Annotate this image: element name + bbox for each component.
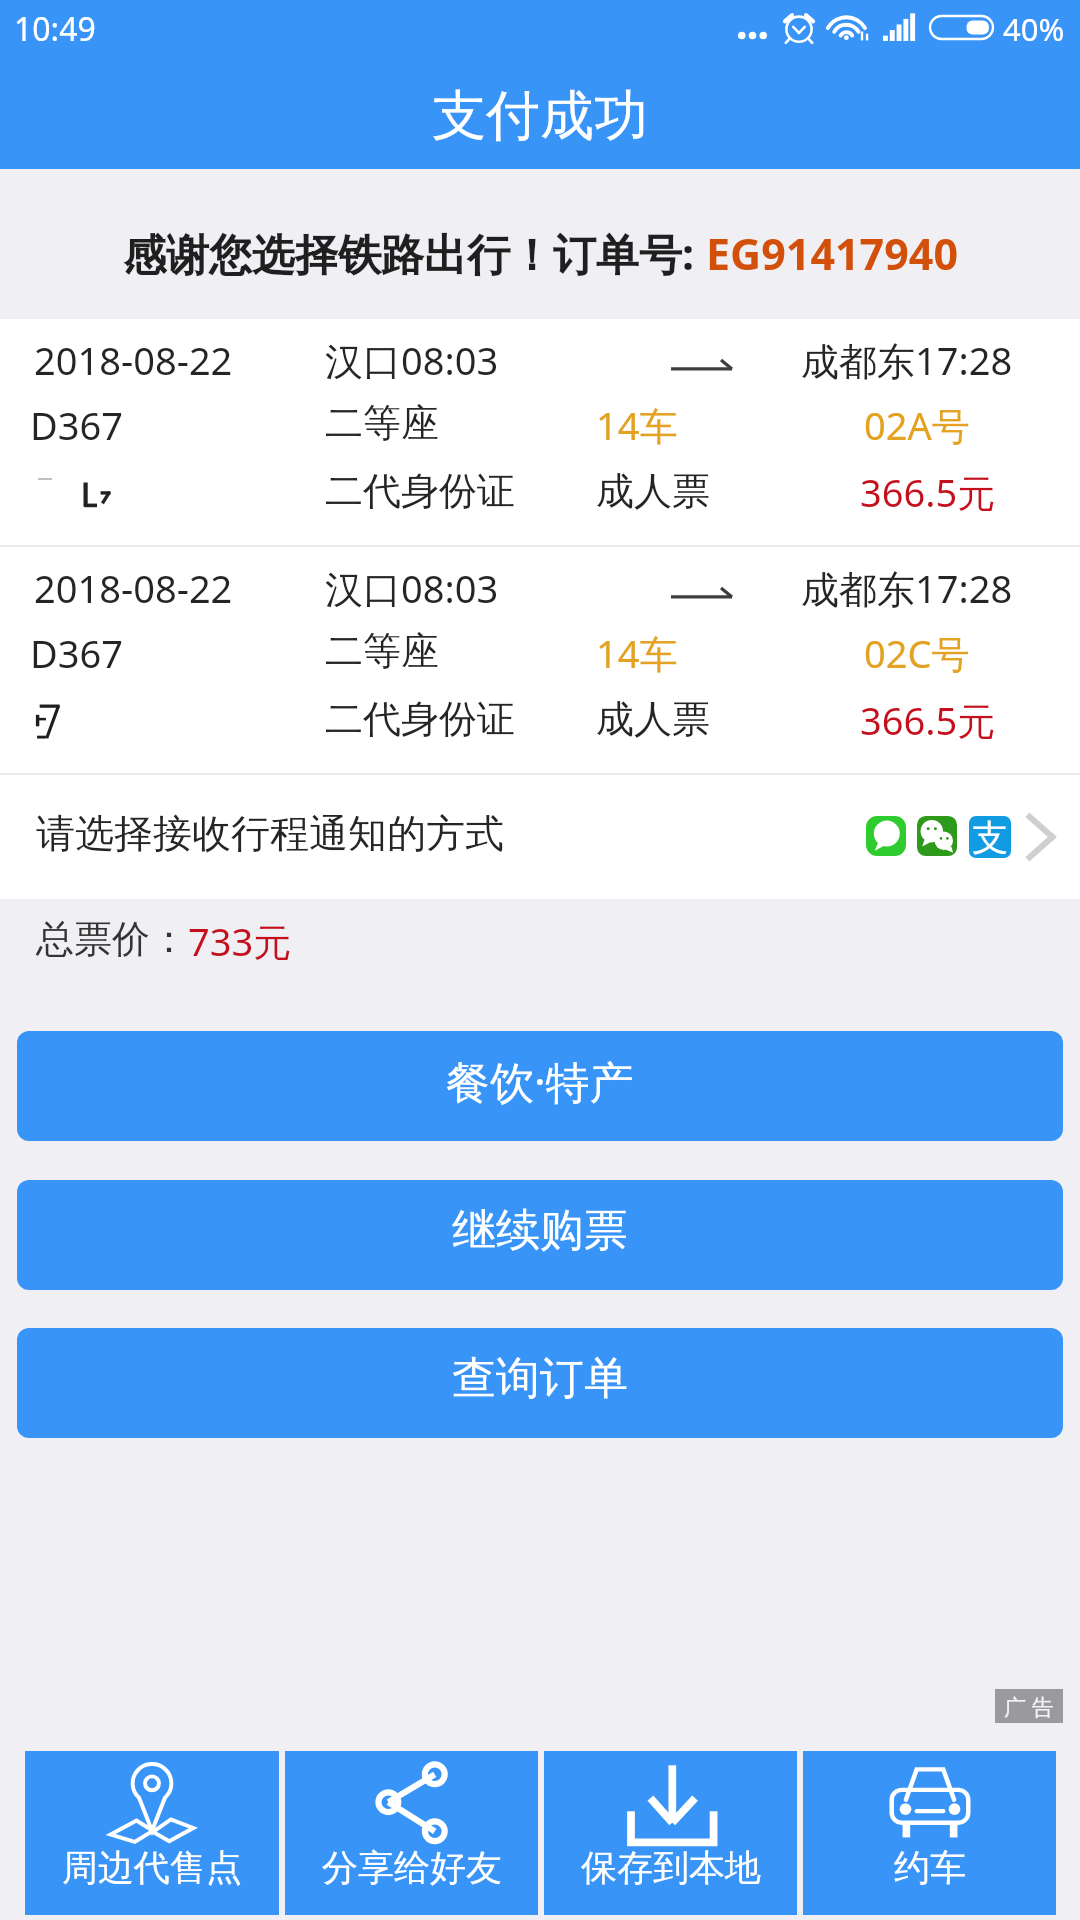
staticText: 2018-08-22 (34, 334, 233, 386)
staticText: 分享给好友 (322, 1845, 502, 1890)
staticText: 02A号 (864, 399, 970, 451)
staticText: D367 (30, 627, 123, 679)
staticText: 请选择接收行程通知的方式 (36, 809, 504, 858)
staticText: 366.5元 (860, 466, 996, 518)
staticText: 二代身份证 (325, 467, 515, 515)
staticText: 366.5元 (860, 694, 996, 746)
staticText: 10:49 (14, 7, 96, 51)
staticText: 733元 (188, 915, 292, 967)
button[interactable]: 请选择接收行程通知的方式 (0, 775, 1080, 899)
staticText: 成都东17:28 (801, 334, 1013, 386)
staticText: 感谢您选择铁路出行！订单号: (123, 224, 706, 283)
staticText: 成都东17:28 (801, 562, 1013, 614)
staticText: 继续购票 (452, 1203, 628, 1258)
staticText: 二等座 (325, 627, 439, 675)
staticText: 成人票 (596, 695, 710, 743)
staticText: 查询订单 (452, 1351, 628, 1406)
staticText: 支付成功 (432, 82, 648, 150)
button[interactable]: 继续购票 (17, 1180, 1063, 1290)
staticText: 周边代售点 (62, 1845, 242, 1890)
button[interactable]: 周边代售点 (25, 1751, 279, 1915)
staticText: D367 (30, 399, 123, 451)
staticText: 总票价： (36, 915, 188, 963)
staticText: 14车 (596, 627, 678, 679)
staticText: 二等座 (325, 399, 439, 447)
button[interactable]: 约车 (803, 1751, 1056, 1915)
staticText: 支 (972, 816, 1008, 857)
staticText: 约车 (894, 1845, 966, 1890)
staticText: 成人票 (596, 467, 710, 515)
button[interactable]: 保存到本地 (544, 1751, 797, 1915)
staticText: 2018-08-22 (34, 562, 233, 614)
staticText: 14车 (596, 399, 678, 451)
staticText: 40% (1003, 8, 1065, 50)
staticText: 汉口08:03 (325, 334, 499, 386)
staticText: 保存到本地 (581, 1845, 761, 1890)
button[interactable]: 分享给好友 (285, 1751, 538, 1915)
staticText: 餐饮·特产 (446, 1051, 634, 1111)
staticText: 汉口08:03 (325, 562, 499, 614)
staticText: 二代身份证 (325, 695, 515, 743)
button[interactable]: 查询订单 (17, 1328, 1063, 1438)
staticText: 广 告 (1004, 1691, 1054, 1721)
button[interactable]: 餐饮·特产 (17, 1031, 1063, 1141)
staticText: 02C号 (864, 627, 970, 679)
staticText: EG91417940 (706, 224, 958, 283)
